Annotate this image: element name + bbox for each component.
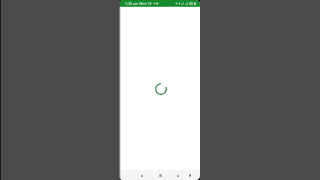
- staticText: 1:30 am Wed 18: [125, 1, 152, 6]
- button[interactable]: Back: [138, 172, 145, 179]
- button[interactable]: Hide keyboard: [186, 172, 193, 179]
- button[interactable]: Recent apps: [174, 172, 181, 179]
- button[interactable]: Loading: [154, 82, 168, 96]
- button[interactable]: Home: [157, 172, 164, 179]
- staticText: 88: [189, 1, 194, 6]
